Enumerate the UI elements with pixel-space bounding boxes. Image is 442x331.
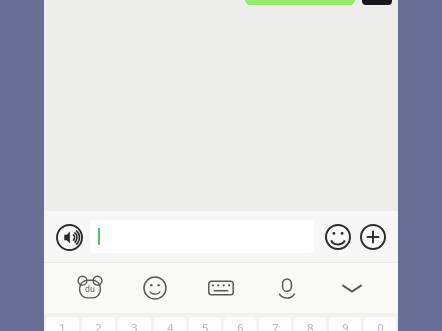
button[interactable]: 1 xyxy=(46,317,79,331)
staticText: du xyxy=(85,283,95,294)
button[interactable]: 4 xyxy=(154,317,186,331)
staticText: 4 xyxy=(167,320,174,331)
button[interactable]: More options xyxy=(357,221,389,253)
button[interactable]: Keyboard layout xyxy=(201,268,241,308)
button[interactable]: 9 xyxy=(329,317,361,331)
button[interactable]: 0 xyxy=(364,317,396,331)
staticText: 8 xyxy=(307,320,314,331)
button[interactable]: 2 xyxy=(82,317,115,331)
button[interactable]: 7 xyxy=(259,317,291,331)
button[interactable]: 3 xyxy=(118,317,151,331)
button[interactable]: Voice input xyxy=(53,221,85,253)
staticText: 7 xyxy=(272,320,279,331)
button[interactable] xyxy=(90,220,314,253)
staticText: 5 xyxy=(202,320,209,331)
button[interactable]: Emoji xyxy=(322,221,354,253)
button[interactable]: Voice typing xyxy=(267,268,307,308)
staticText: 3 xyxy=(131,320,138,331)
staticText: 2 xyxy=(95,320,102,331)
button[interactable]: Stickers xyxy=(135,268,175,308)
button[interactable]: Hide keyboard xyxy=(332,268,372,308)
button[interactable]: 6 xyxy=(224,317,256,331)
staticText: 9 xyxy=(342,320,349,331)
button[interactable]: Baidu input settings xyxy=(70,268,110,308)
button[interactable] xyxy=(362,0,392,5)
button[interactable] xyxy=(245,0,355,5)
button[interactable]: 8 xyxy=(294,317,326,331)
staticText: 6 xyxy=(237,320,244,331)
staticText: 0 xyxy=(377,320,384,331)
staticText: 1 xyxy=(59,320,66,331)
button[interactable]: 5 xyxy=(189,317,221,331)
